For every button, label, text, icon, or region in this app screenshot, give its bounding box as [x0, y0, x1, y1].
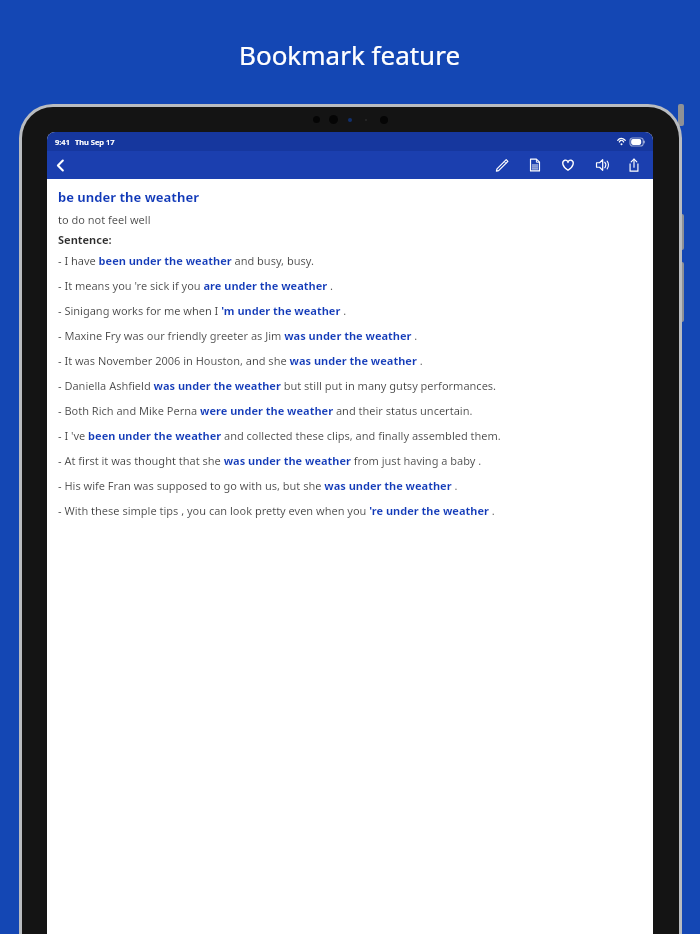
button[interactable]: Back: [47, 152, 73, 178]
staticText: - At first it was thought that she was u…: [58, 453, 482, 468]
staticText: Thu Sep 17: [75, 137, 115, 147]
staticText: to do not feel well: [58, 212, 151, 227]
staticText: - I 've been under the weather and colle…: [58, 428, 501, 443]
staticText: Sentence:: [58, 232, 112, 247]
staticText: - It means you 're sick if you are under…: [58, 278, 333, 293]
staticText: - With these simple tips , you can look …: [58, 503, 495, 518]
staticText: - It was November 2006 in Houston, and s…: [58, 353, 423, 368]
button[interactable]: Sound: [590, 154, 612, 176]
staticText: - Maxine Fry was our friendly greeter as…: [58, 328, 418, 343]
staticText: be under the weather: [58, 188, 199, 206]
staticText: 9:41: [55, 137, 70, 147]
staticText: - Both Rich and Mike Perna were under th…: [58, 403, 473, 418]
staticText: Bookmark feature: [239, 37, 461, 72]
staticText: - Sinigang works for me when I 'm under …: [58, 303, 347, 318]
button[interactable]: Favorite: [557, 154, 579, 176]
staticText: - Daniella Ashfield was under the weathe…: [58, 378, 497, 393]
button[interactable]: Edit: [491, 154, 513, 176]
staticText: - His wife Fran was supposed to go with …: [58, 478, 458, 493]
button[interactable]: Share: [623, 154, 645, 176]
staticText: - I have been under the weather and busy…: [58, 253, 314, 268]
button[interactable]: Document: [524, 154, 546, 176]
